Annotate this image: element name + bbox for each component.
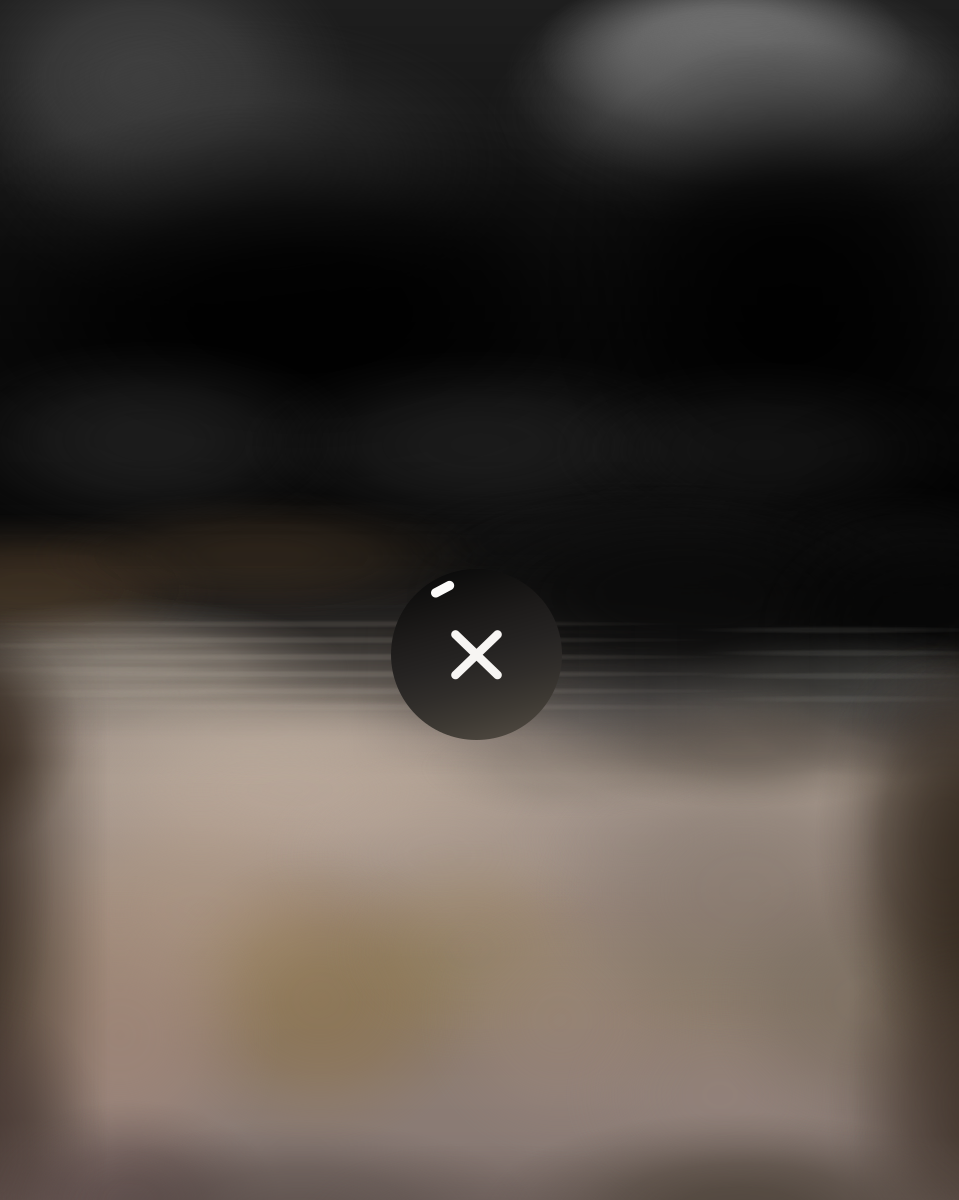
button[interactable]: Close (391, 569, 562, 740)
